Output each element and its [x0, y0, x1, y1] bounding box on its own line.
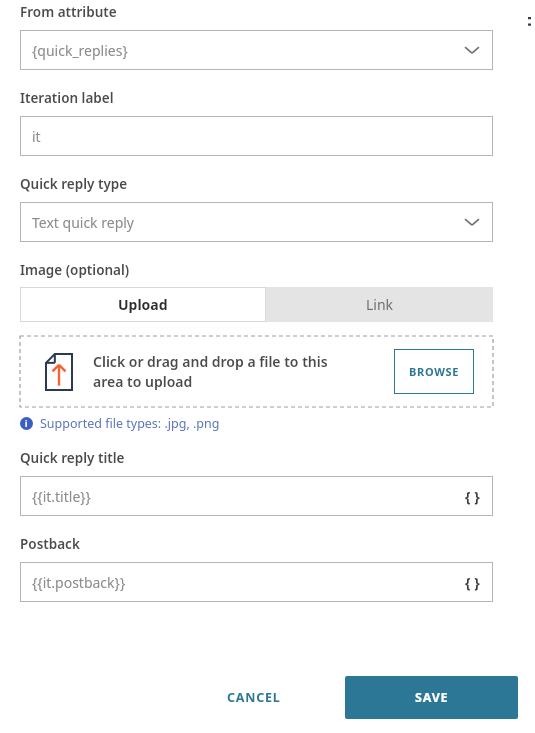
staticText: Image (optional): [20, 261, 130, 279]
staticText: {{it.title}}: [32, 487, 91, 506]
staticText: Link: [366, 295, 394, 314]
button[interactable]: Upload: [20, 287, 266, 322]
staticText: SAVE: [415, 689, 449, 706]
staticText: BROWSE: [409, 364, 460, 379]
staticText: {{it.postback}}: [32, 573, 126, 592]
staticText: Postback: [20, 535, 80, 553]
staticText: Supported file types: .jpg, .png: [40, 415, 220, 432]
button[interactable]: it: [20, 116, 493, 156]
staticText: {quick_replies}: [32, 41, 128, 60]
staticText: it: [32, 127, 41, 146]
staticText: Upload: [118, 295, 168, 314]
staticText: Iteration label: [20, 89, 114, 107]
staticText: Quick reply type: [20, 175, 128, 193]
button[interactable]: {quick_replies}: [20, 30, 493, 70]
staticText: CANCEL: [227, 689, 281, 706]
staticText: Text quick reply: [32, 213, 134, 232]
button[interactable]: {{it.postback}}: [20, 562, 493, 602]
button[interactable]: BROWSE: [394, 349, 474, 394]
staticText: { }: [465, 573, 480, 592]
staticText: From attribute: [20, 3, 117, 21]
button[interactable]: Link: [266, 287, 493, 322]
staticText: Click or drag and drop a file to this ar…: [93, 352, 328, 392]
staticText: i: [25, 418, 28, 429]
staticText: Quick reply title: [20, 449, 125, 467]
button[interactable]: SAVE: [345, 676, 518, 719]
button[interactable]: Click or drag and drop a file to upload: [20, 336, 493, 407]
button[interactable]: CANCEL: [198, 676, 310, 719]
button[interactable]: {{it.title}}: [20, 476, 493, 516]
staticText: { }: [465, 487, 480, 506]
button[interactable]: Text quick reply: [20, 202, 493, 242]
